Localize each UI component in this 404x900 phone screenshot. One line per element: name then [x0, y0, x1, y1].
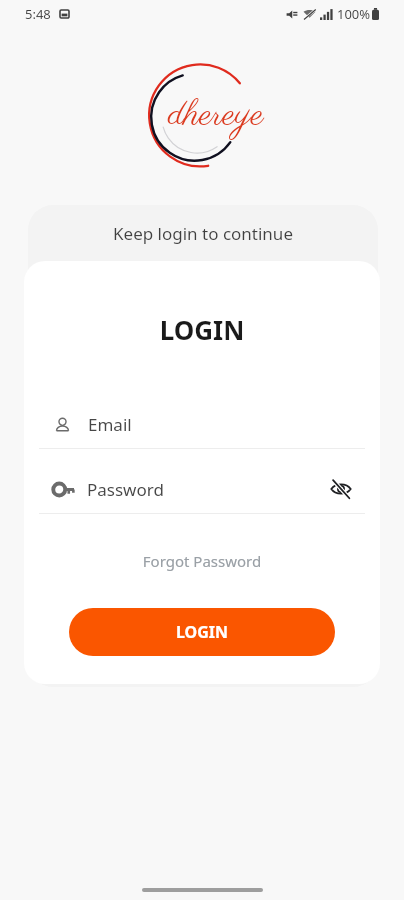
- button[interactable]: Password: [39, 467, 365, 511]
- staticText: 5:48: [25, 5, 51, 23]
- staticText: 100%: [337, 5, 371, 23]
- button[interactable]: Forgot Password: [24, 551, 380, 571]
- staticText: Email: [88, 413, 132, 436]
- staticText: LOGIN: [176, 621, 229, 643]
- button[interactable]: Show password: [324, 472, 358, 506]
- button[interactable]: Email: [39, 403, 365, 446]
- staticText: dhereye: [168, 91, 264, 140]
- button[interactable]: LOGIN: [69, 608, 335, 656]
- staticText: Keep login to continue: [28, 222, 378, 245]
- staticText: LOGIN: [24, 312, 380, 347]
- staticText: Password: [87, 478, 164, 501]
